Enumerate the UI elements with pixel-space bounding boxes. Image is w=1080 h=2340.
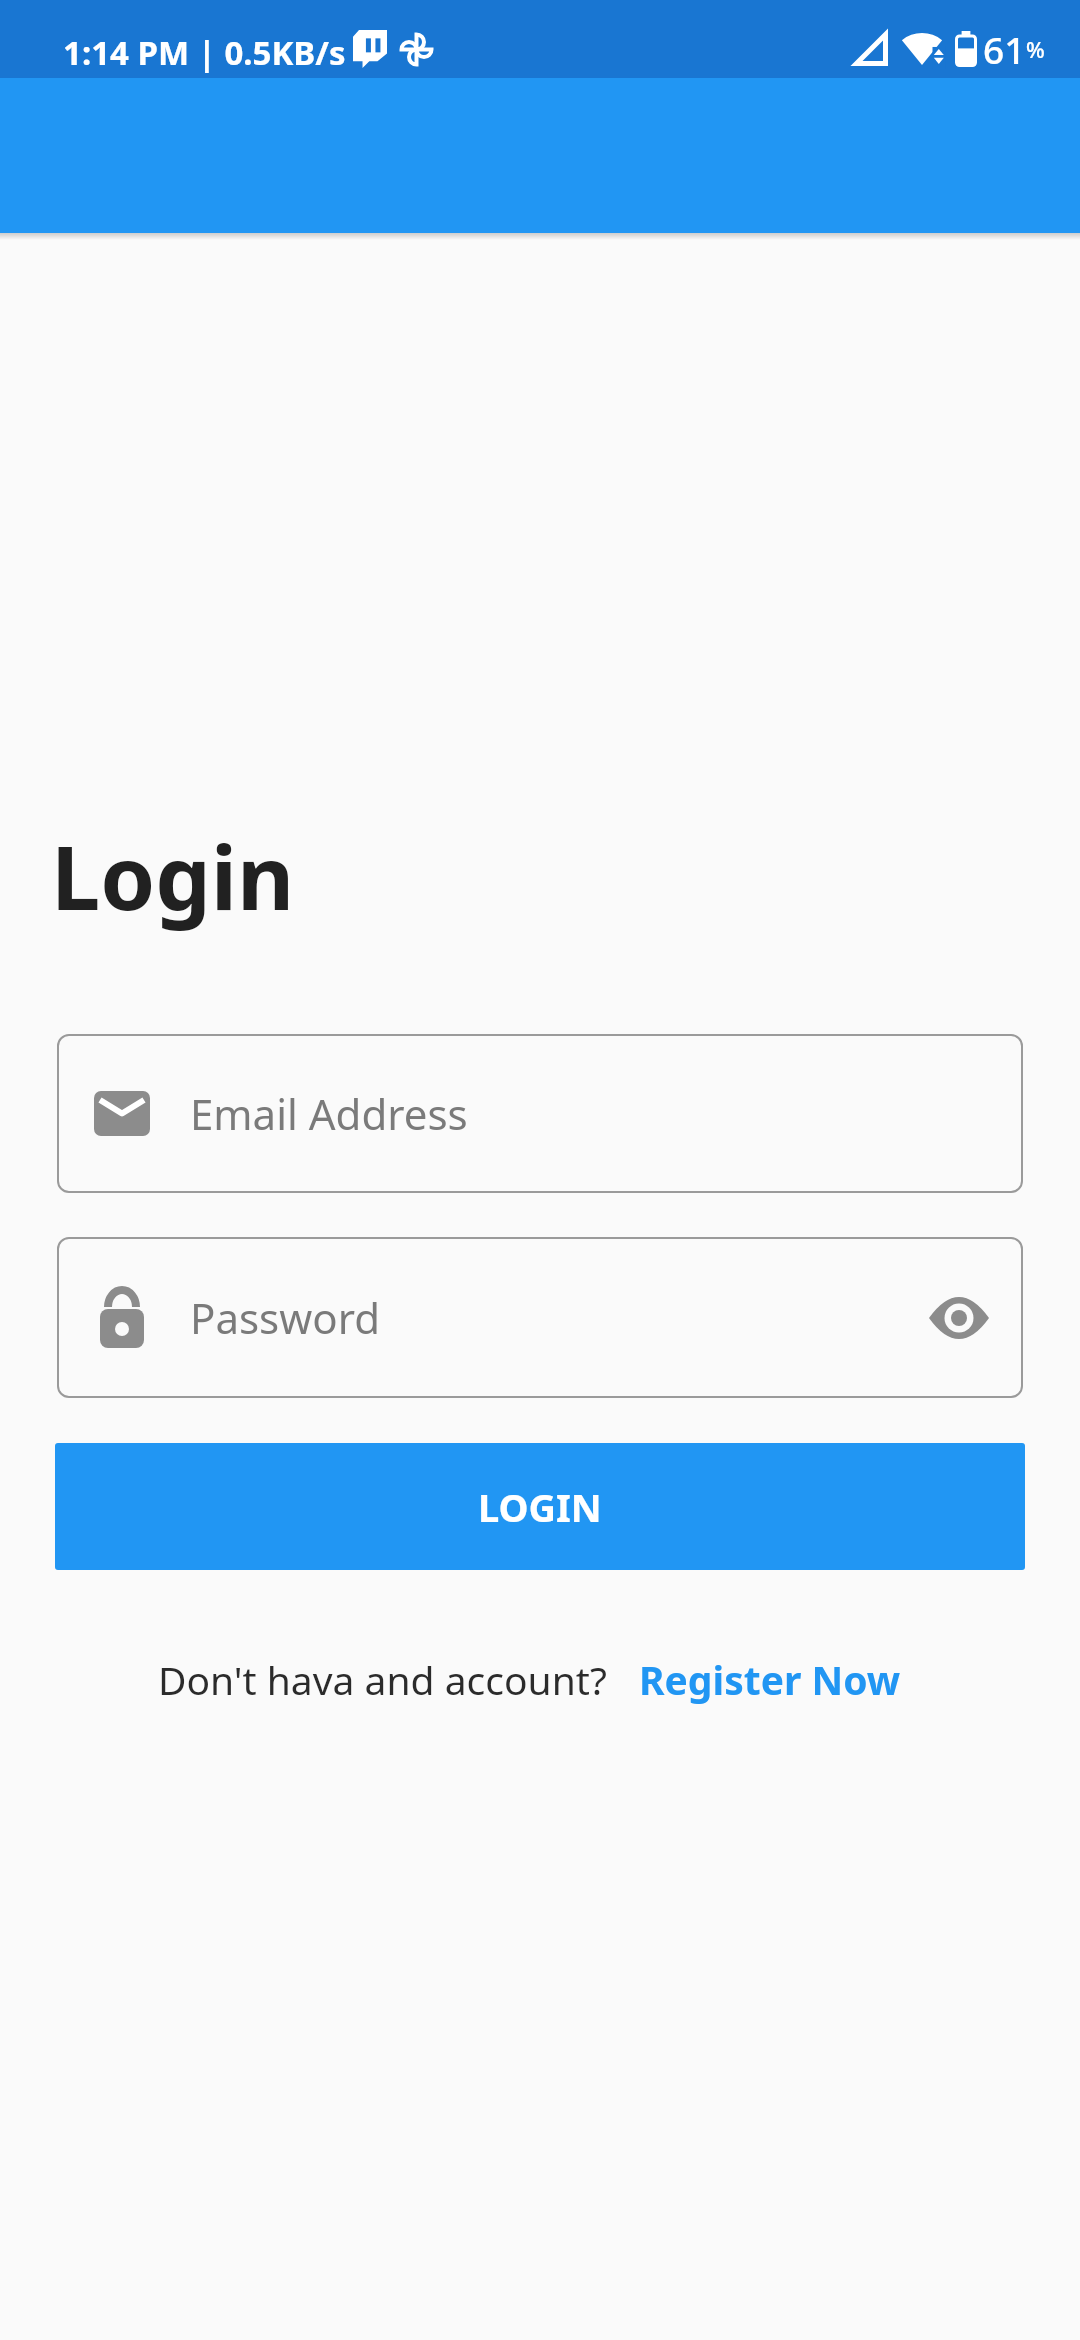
staticText: % <box>1026 34 1045 64</box>
button[interactable] <box>929 1297 989 1339</box>
button[interactable]: Password <box>57 1237 1023 1398</box>
staticText: Register Now <box>639 1653 901 1706</box>
staticText: LOGIN <box>478 1481 602 1533</box>
staticText: Login <box>51 816 295 936</box>
staticText: 1:14 PM | 0.5KB/s <box>63 30 346 75</box>
button[interactable]: LOGIN <box>55 1443 1025 1570</box>
button[interactable]: Register Now <box>639 1653 901 1706</box>
button[interactable]: Email Address <box>57 1034 1023 1193</box>
staticText: Don't hava and account? <box>158 1653 607 1706</box>
staticText: 61 <box>983 24 1026 74</box>
staticText: Password <box>190 1289 380 1346</box>
staticText: Email Address <box>190 1085 468 1142</box>
